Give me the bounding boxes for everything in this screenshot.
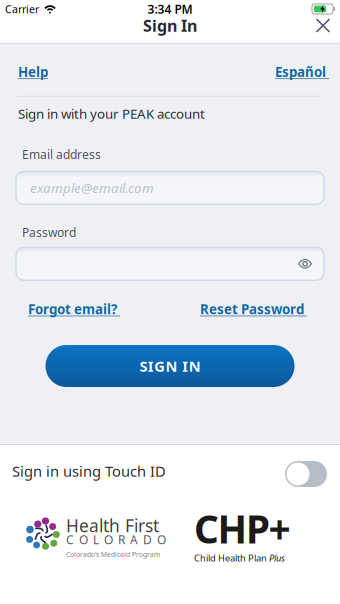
staticText: Sign in using Touch ID bbox=[12, 461, 166, 481]
button[interactable] bbox=[316, 18, 340, 32]
staticText: Español bbox=[275, 63, 329, 81]
staticText: Carrier bbox=[5, 2, 39, 16]
button[interactable] bbox=[285, 458, 327, 484]
button[interactable]: Help bbox=[18, 63, 48, 81]
staticText: C O L O R A D O bbox=[66, 531, 166, 547]
staticText: Health First bbox=[66, 514, 159, 537]
staticText: example@email.com bbox=[30, 179, 154, 197]
button[interactable]: example@email.com bbox=[0, 171, 340, 204]
staticText: Child Health Plan Plus bbox=[194, 552, 285, 564]
staticText: Password bbox=[22, 224, 76, 240]
staticText: 3:34 PM bbox=[147, 1, 192, 17]
button[interactable]: SIGN IN bbox=[45, 345, 294, 387]
staticText: Sign In bbox=[143, 15, 197, 36]
staticText: Email address bbox=[22, 146, 101, 162]
button[interactable]: Español bbox=[275, 63, 329, 81]
staticText: Help bbox=[18, 63, 48, 81]
button[interactable] bbox=[0, 247, 340, 280]
button[interactable]: Forgot email? bbox=[28, 300, 120, 318]
staticText: Forgot email? bbox=[28, 300, 120, 318]
staticText: CHP+ bbox=[194, 503, 290, 554]
staticText: Reset Password bbox=[200, 300, 307, 318]
staticText: SIGN IN bbox=[139, 356, 201, 376]
staticText: Colorado's Medicaid Program bbox=[66, 550, 160, 559]
staticText: Sign in with your PEAK account bbox=[18, 105, 205, 122]
button[interactable]: Reset Password bbox=[200, 300, 307, 318]
